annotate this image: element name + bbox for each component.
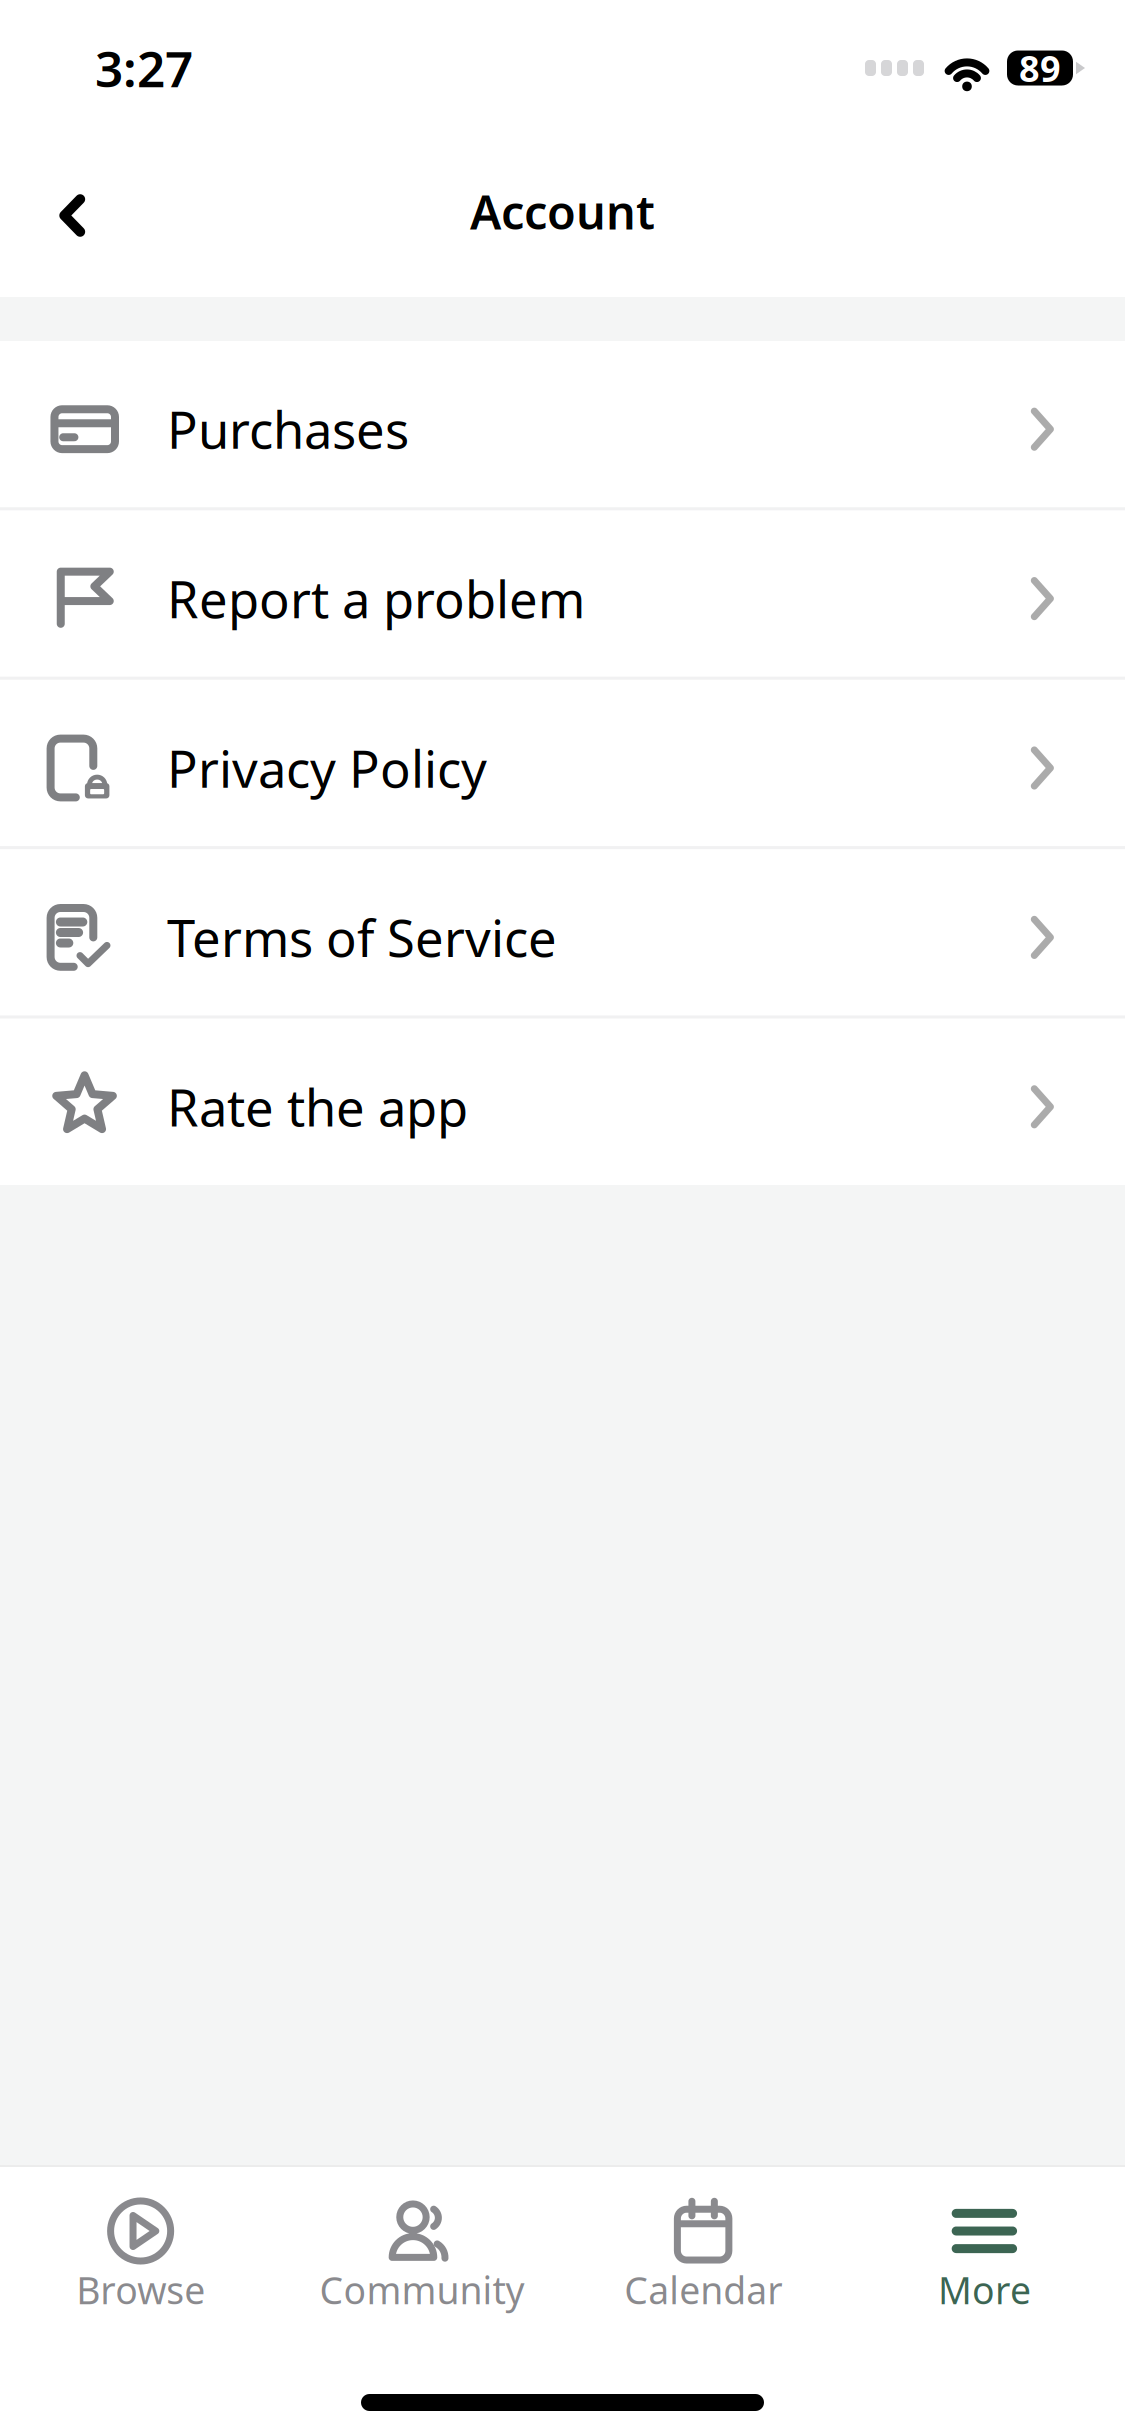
button[interactable]: Purchases [0, 341, 1125, 507]
button[interactable]: Rate the app [0, 1019, 1125, 1185]
button[interactable]: Community [281, 2198, 562, 2315]
staticText: Account [470, 180, 655, 242]
staticText: Report a problem [167, 565, 585, 632]
button[interactable]: More [844, 2198, 1125, 2315]
button[interactable]: Browse [0, 2198, 281, 2315]
staticText: Purchases [167, 396, 409, 463]
button[interactable]: Terms of Service [0, 849, 1125, 1016]
staticText: 3:27 [95, 35, 193, 101]
staticText: Browse [76, 2265, 205, 2315]
staticText: Calendar [624, 2265, 782, 2315]
staticText: 89 [1019, 44, 1061, 92]
staticText: Rate the app [167, 1073, 468, 1140]
staticText: Community [319, 2265, 524, 2315]
button[interactable]: Privacy Policy [0, 680, 1125, 846]
staticText: More [938, 2265, 1031, 2315]
staticText: Terms of Service [167, 904, 557, 971]
button[interactable]: Calendar [562, 2198, 844, 2315]
button[interactable]: Report a problem [0, 510, 1125, 677]
button[interactable]: Back [0, 151, 124, 256]
staticText: Privacy Policy [167, 734, 487, 802]
